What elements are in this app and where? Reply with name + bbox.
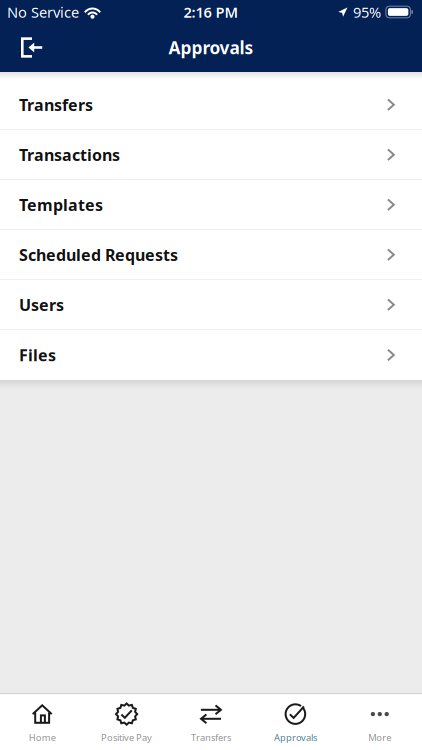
staticText: Approvals <box>274 731 317 743</box>
staticText: No Service <box>7 2 79 22</box>
button[interactable]: Transactions <box>0 130 422 180</box>
button[interactable]: Scheduled Requests <box>0 230 422 280</box>
staticText: 2:16 PM <box>183 2 238 22</box>
staticText: Templates <box>19 194 103 215</box>
staticText: Approvals <box>168 36 253 59</box>
button[interactable]: Users <box>0 280 422 330</box>
staticText: Positive Pay <box>101 731 152 743</box>
staticText: Users <box>19 294 64 315</box>
button[interactable]: Transfers <box>169 694 253 750</box>
button[interactable]: Home <box>0 694 84 750</box>
button[interactable]: More <box>338 694 422 750</box>
staticText: Home <box>29 731 56 743</box>
staticText: More <box>368 731 391 743</box>
staticText: Transfers <box>191 731 231 743</box>
button[interactable]: Positive Pay <box>84 694 169 750</box>
button[interactable]: Files <box>0 330 422 380</box>
staticText: Transactions <box>19 144 120 165</box>
button[interactable]: Templates <box>0 180 422 230</box>
button[interactable]: Sign out <box>0 25 55 70</box>
staticText: Files <box>19 344 56 366</box>
staticText: 95% <box>353 2 381 22</box>
staticText: Scheduled Requests <box>19 244 178 265</box>
button[interactable]: Approvals <box>253 694 338 750</box>
staticText: Transfers <box>19 94 93 115</box>
button[interactable]: Transfers <box>0 80 422 130</box>
